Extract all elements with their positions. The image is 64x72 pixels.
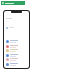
button[interactable] [4, 39, 29, 44]
button[interactable] [1, 1, 25, 5]
button[interactable] [4, 53, 29, 57]
button[interactable] [4, 48, 29, 53]
button[interactable] [4, 62, 29, 66]
button[interactable] [4, 44, 29, 48]
button[interactable] [4, 57, 29, 62]
button[interactable] [4, 26, 29, 29]
